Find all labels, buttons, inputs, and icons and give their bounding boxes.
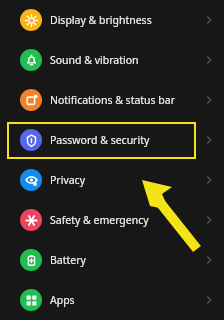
other: Open Password & security (204, 135, 214, 145)
staticText: Privacy (50, 173, 86, 187)
button[interactable]: Notifications & status bar (0, 80, 224, 120)
staticText: Apps (50, 293, 75, 307)
button[interactable]: Apps (0, 280, 224, 320)
button[interactable]: Privacy (0, 160, 224, 200)
staticText: Battery (50, 253, 86, 267)
other: Open Apps (204, 295, 214, 305)
staticText: Password & security (50, 133, 150, 147)
button[interactable]: Password & security (0, 120, 224, 160)
button[interactable]: Sound & vibration (0, 40, 224, 80)
other: Open Sound & vibration (204, 55, 214, 65)
button[interactable]: Safety & emergency (0, 200, 224, 240)
staticText: Display & brightness (50, 13, 152, 27)
staticText: Notifications & status bar (50, 93, 176, 107)
staticText: Safety & emergency (50, 213, 149, 227)
other: Open Safety & emergency (204, 215, 214, 225)
other: Open Privacy (204, 175, 214, 185)
button[interactable]: Display & brightness (0, 0, 224, 40)
other: Open Battery (204, 255, 214, 265)
button[interactable]: Battery (0, 240, 224, 280)
other: Open Display & brightness (204, 15, 214, 25)
other: Open Notifications & status bar (204, 95, 214, 105)
staticText: Sound & vibration (50, 53, 139, 67)
